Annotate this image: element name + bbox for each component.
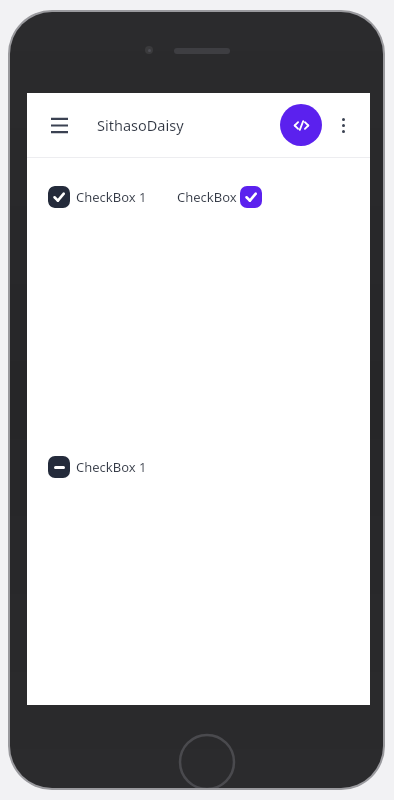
staticText: CheckBox 1 [76,458,147,476]
button[interactable]: CheckBox 1 [48,186,147,208]
button[interactable]: Open navigation menu [41,107,77,143]
staticText: CheckBox 1 [76,188,147,206]
button[interactable]: CheckBox 1 [48,452,147,482]
staticText: CheckBox 1 [177,188,248,206]
button[interactable]: Show code [280,104,322,146]
staticText: SithasoDaisy [97,115,184,135]
button[interactable]: More options [326,108,360,142]
button[interactable]: CheckBox 1 [177,186,270,208]
